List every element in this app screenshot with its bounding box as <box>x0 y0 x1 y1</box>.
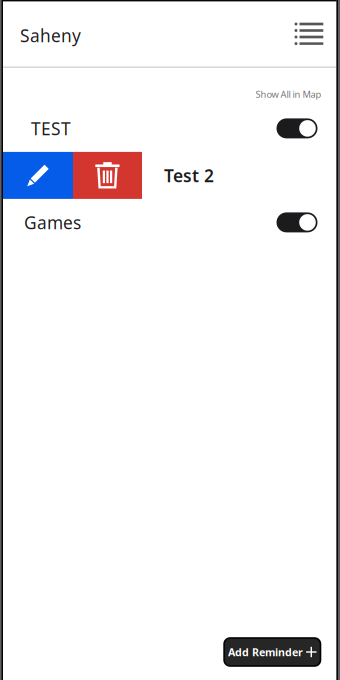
staticText: Add Reminder <box>228 645 303 659</box>
button[interactable]: List options <box>290 18 327 49</box>
button[interactable]: Edit <box>3 152 73 199</box>
button[interactable]: Games <box>3 199 336 246</box>
button[interactable]: TEST <box>3 105 336 152</box>
button[interactable]: Test 2 <box>142 152 336 199</box>
button[interactable]: Add Reminder <box>224 638 320 666</box>
staticText: Saheny <box>20 24 81 47</box>
button[interactable]: Delete <box>73 152 142 199</box>
staticText: TEST <box>31 117 71 140</box>
staticText: Test 2 <box>164 164 214 187</box>
staticText: Games <box>24 211 81 234</box>
button[interactable]: Show All in Map <box>255 72 321 100</box>
staticText: Show All in Map <box>255 88 321 100</box>
